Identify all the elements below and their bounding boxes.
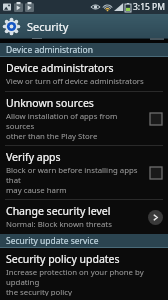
staticText: View or turn off device administrators — [6, 76, 144, 87]
staticText: Allow installation of apps from sources … — [6, 111, 144, 141]
staticText: Block or warn before installing apps tha… — [6, 165, 144, 195]
other: Settings — [3, 18, 20, 35]
button[interactable]: Change security level — [0, 200, 168, 234]
staticText: Unknown sources — [6, 96, 94, 110]
staticText: 3:15 PM — [133, 1, 165, 13]
staticText: Change security level — [6, 204, 111, 218]
staticText: Verify apps — [6, 150, 61, 164]
button[interactable]: Device administrators — [0, 57, 168, 91]
button[interactable]: Verify apps — [148, 165, 163, 180]
staticText: Increase protection on your phone by upd… — [6, 267, 163, 296]
staticText: Security update service — [6, 235, 99, 247]
staticText: Security policy updates — [6, 252, 120, 266]
button[interactable]: Unknown sources — [0, 92, 168, 145]
button[interactable]: Settings — [0, 14, 168, 38]
staticText: Normal: Block known threats — [6, 219, 112, 230]
staticText: Security — [27, 19, 69, 34]
button[interactable]: Security policy updates — [0, 248, 168, 300]
button[interactable]: Unknown sources — [148, 111, 163, 126]
button[interactable]: Verify apps — [0, 146, 168, 199]
staticText: Device administration — [6, 44, 93, 56]
button[interactable]: Change security level — [148, 210, 163, 225]
staticText: Device administrators — [6, 61, 114, 75]
